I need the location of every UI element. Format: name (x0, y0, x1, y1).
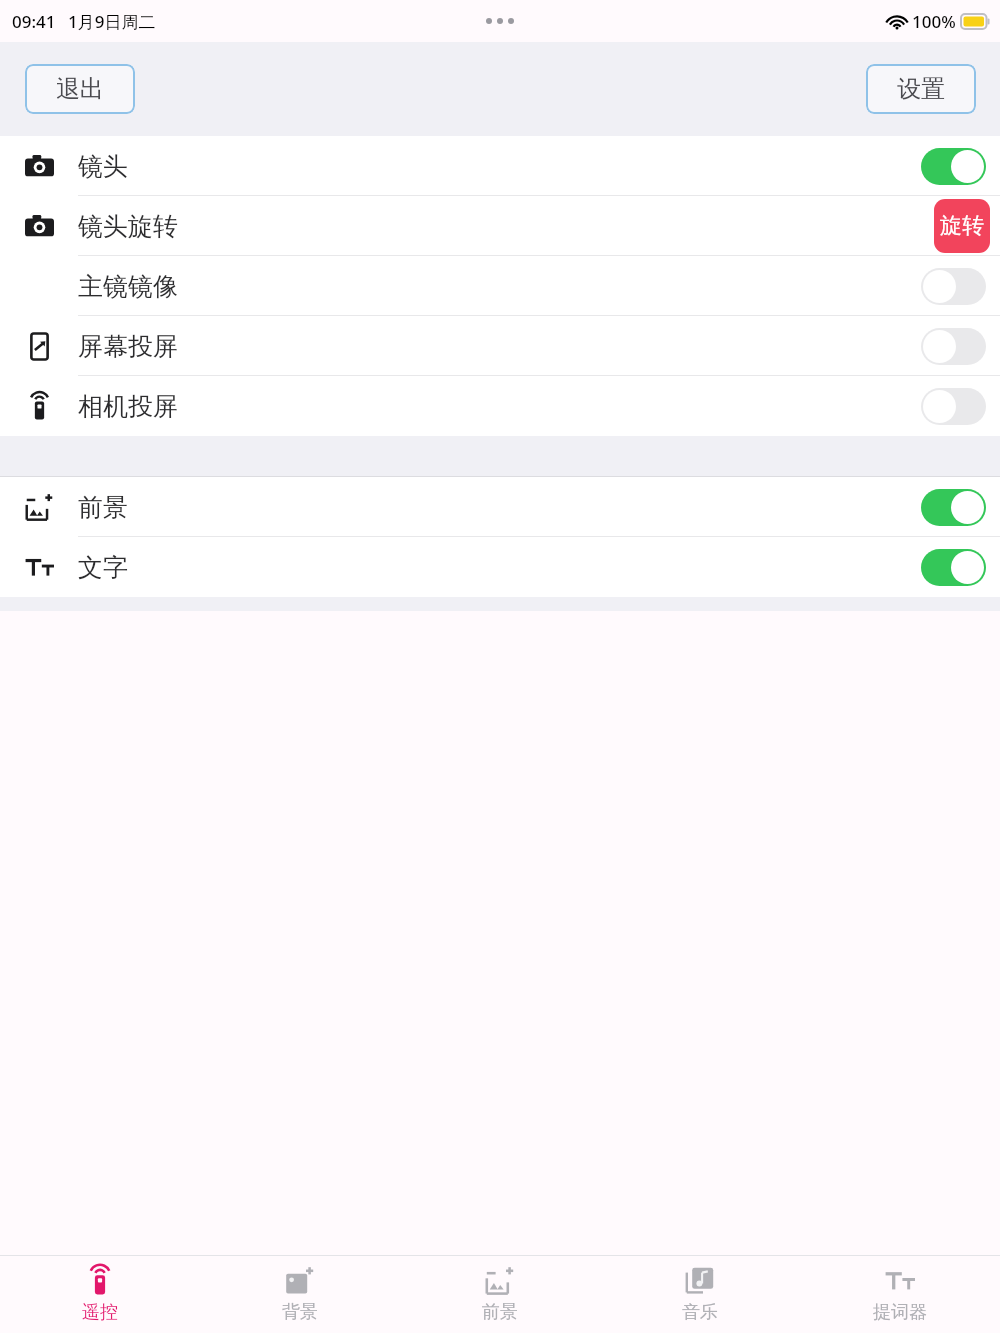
button[interactable]: On (921, 549, 986, 586)
staticText: 1月9日周二 (68, 10, 156, 33)
button[interactable]: 设置 (866, 64, 976, 114)
staticText: 前景 (482, 1301, 518, 1324)
button[interactable]: 前景 (400, 1256, 600, 1333)
button[interactable]: Camera cast (0, 376, 1000, 436)
button[interactable]: 提词器 (800, 1256, 1000, 1333)
staticText: 镜头 (78, 151, 128, 182)
staticText: 退出 (56, 74, 104, 104)
staticText: 遥控 (82, 1301, 118, 1324)
button[interactable]: Text (0, 537, 1000, 597)
button[interactable]: 旋转 (934, 199, 990, 253)
button[interactable]: 背景 (200, 1256, 400, 1333)
button[interactable]: 退出 (25, 64, 135, 114)
other: Camera (25, 152, 54, 181)
staticText: 主镜镜像 (78, 271, 178, 302)
button[interactable]: Screen cast (0, 316, 1000, 376)
button[interactable]: On (921, 489, 986, 526)
staticText: 镜头旋转 (78, 211, 178, 242)
button[interactable]: Off (921, 328, 986, 365)
staticText: 100% (912, 10, 956, 33)
staticText: 09:41 (12, 10, 56, 33)
other: Text (25, 553, 54, 582)
staticText: 音乐 (682, 1301, 718, 1324)
button[interactable]: 音乐 (600, 1256, 800, 1333)
button[interactable]: Off (921, 388, 986, 425)
button[interactable]: 遥控 (0, 1256, 200, 1333)
staticText: 旋转 (940, 212, 984, 240)
button[interactable]: Camera rotate (0, 196, 1000, 256)
other: Camera rotate (25, 212, 54, 241)
other: Foreground (25, 493, 54, 522)
staticText: 前景 (78, 492, 128, 523)
staticText: 提词器 (873, 1301, 927, 1324)
staticText: 背景 (282, 1301, 318, 1324)
other: Screen cast (25, 332, 54, 361)
other: Camera cast (25, 392, 54, 421)
button[interactable]: Camera (0, 136, 1000, 196)
staticText: 设置 (897, 74, 945, 104)
button[interactable]: Off (921, 268, 986, 305)
staticText: 相机投屏 (78, 391, 178, 422)
staticText: 屏幕投屏 (78, 331, 178, 362)
button[interactable]: 主镜镜像 (0, 256, 1000, 316)
button[interactable]: Foreground (0, 477, 1000, 537)
button[interactable]: On (921, 148, 986, 185)
staticText: 文字 (78, 552, 128, 583)
